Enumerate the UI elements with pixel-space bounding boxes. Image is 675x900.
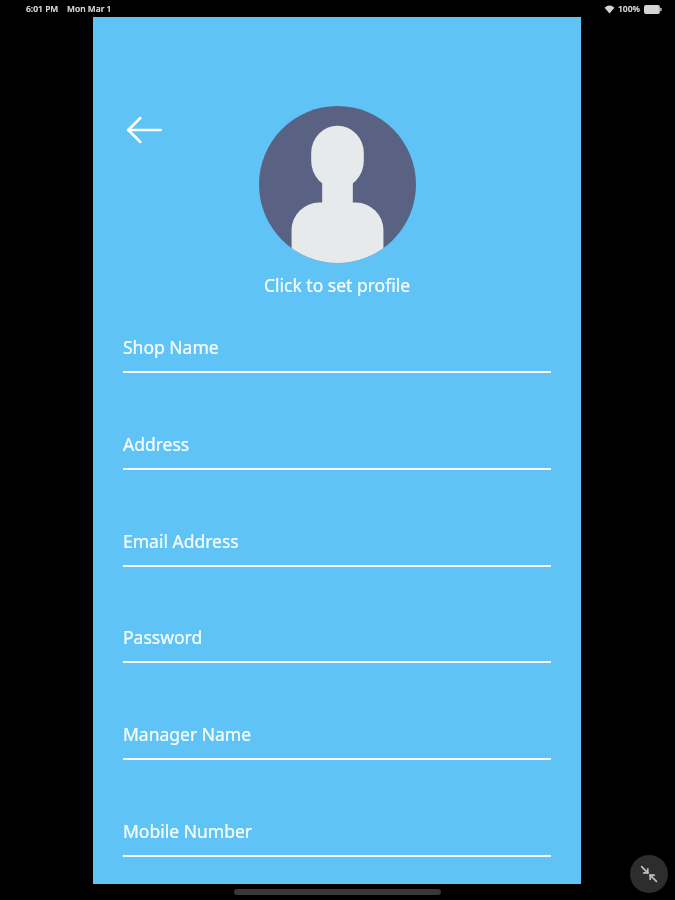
button[interactable]: Manager Name bbox=[123, 722, 551, 760]
staticText: Click to set profile bbox=[258, 273, 416, 297]
button[interactable]: Password bbox=[123, 625, 551, 663]
staticText: Mobile Number bbox=[123, 819, 253, 843]
staticText: Email Address bbox=[123, 529, 239, 553]
button[interactable]: Shop Name bbox=[123, 335, 551, 373]
staticText: Address bbox=[123, 432, 190, 456]
button[interactable]: Address bbox=[123, 432, 551, 470]
staticText: 6:01 PM bbox=[26, 3, 59, 15]
button[interactable]: Back bbox=[116, 102, 172, 158]
staticText: Shop Name bbox=[123, 335, 219, 359]
button[interactable]: Click to set profile bbox=[258, 106, 416, 297]
staticText: Password bbox=[123, 625, 203, 649]
staticText: 100% bbox=[618, 3, 641, 15]
staticText: Mon Mar 1 bbox=[67, 3, 112, 15]
button[interactable]: Shrink window bbox=[630, 855, 668, 893]
staticText: Manager Name bbox=[123, 722, 252, 746]
button[interactable]: Email Address bbox=[123, 529, 551, 567]
button[interactable]: Mobile Number bbox=[123, 819, 551, 857]
